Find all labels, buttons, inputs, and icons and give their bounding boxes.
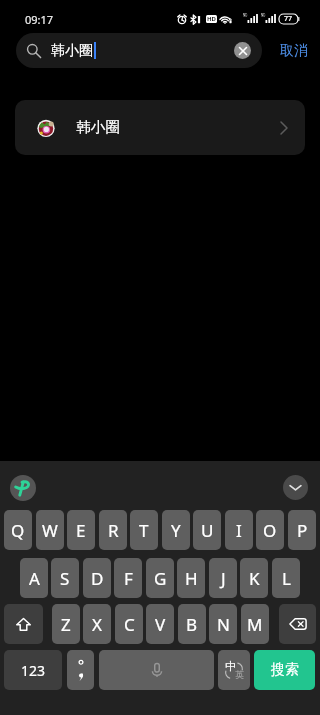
button[interactable]: Switch Chinese English	[218, 650, 250, 690]
button[interactable]: C	[115, 604, 143, 644]
button[interactable]: Y	[162, 510, 190, 550]
button[interactable]: S	[51, 558, 79, 598]
button[interactable]: 韩小圈	[15, 100, 305, 155]
staticText: G	[154, 567, 167, 590]
staticText: B	[186, 613, 198, 636]
button[interactable]: Input method settings	[10, 475, 36, 501]
button[interactable]: Backspace	[279, 604, 316, 644]
staticText: 09:17	[25, 12, 54, 27]
button[interactable]: D	[83, 558, 111, 598]
button[interactable]: F	[114, 558, 142, 598]
staticText: X	[92, 613, 102, 636]
staticText: 韩小圈	[76, 118, 121, 137]
button[interactable]: Q	[4, 510, 32, 550]
button[interactable]: Z	[52, 604, 80, 644]
staticText: W	[42, 519, 58, 542]
button[interactable]: R	[99, 510, 127, 550]
button[interactable]: M	[241, 604, 269, 644]
staticText: P	[297, 519, 308, 542]
staticText: A	[29, 567, 40, 590]
button[interactable]: K	[240, 558, 268, 598]
button[interactable]: Hide keyboard	[283, 475, 308, 500]
staticText: T	[139, 519, 149, 542]
staticText: 韩小圈	[51, 42, 93, 60]
button[interactable]: L	[272, 558, 300, 598]
staticText: J	[221, 567, 226, 590]
staticText: HD	[207, 15, 216, 23]
button[interactable]: H	[177, 558, 205, 598]
staticText: 取消	[280, 42, 308, 60]
staticText: 77	[284, 14, 293, 24]
staticText: K	[249, 567, 260, 590]
button[interactable]: G	[146, 558, 174, 598]
staticText: O	[263, 519, 277, 542]
staticText: V	[155, 613, 166, 636]
button[interactable]: 取消	[262, 33, 320, 68]
button[interactable]: O	[256, 510, 284, 550]
staticText: M	[247, 613, 263, 636]
button[interactable]: E	[67, 510, 95, 550]
staticText: H	[185, 567, 198, 590]
button[interactable]: I	[225, 510, 253, 550]
staticText: I	[236, 519, 242, 542]
staticText: F	[124, 567, 133, 590]
staticText: N	[217, 613, 230, 636]
staticText: E	[76, 519, 86, 542]
button[interactable]: A	[20, 558, 48, 598]
button[interactable]: Space	[99, 650, 214, 690]
button[interactable]: Shift	[4, 604, 43, 644]
button[interactable]: P	[288, 510, 316, 550]
button[interactable]: 搜索	[254, 650, 315, 690]
button[interactable]: 韩小圈	[16, 33, 262, 68]
button[interactable]: X	[83, 604, 111, 644]
staticText: L	[282, 567, 291, 590]
staticText: C	[124, 613, 135, 636]
staticText: 123	[21, 661, 46, 680]
button[interactable]: W	[36, 510, 64, 550]
button[interactable]: U	[193, 510, 221, 550]
staticText: 英	[235, 669, 244, 680]
staticText: Y	[171, 519, 181, 542]
staticText: 中	[225, 659, 236, 673]
button[interactable]: Clear search	[234, 42, 251, 59]
button[interactable]: N	[209, 604, 237, 644]
button[interactable]: J	[209, 558, 237, 598]
staticText: U	[201, 519, 214, 542]
staticText: Q	[11, 519, 25, 542]
staticText: Z	[61, 613, 71, 636]
button[interactable]: Semicolon	[67, 650, 94, 690]
button[interactable]: V	[146, 604, 174, 644]
button[interactable]: T	[130, 510, 158, 550]
staticText: 搜索	[271, 661, 299, 679]
staticText: R	[108, 519, 119, 542]
staticText: S	[60, 567, 70, 590]
button[interactable]: 123	[4, 650, 62, 690]
button[interactable]: B	[178, 604, 206, 644]
staticText: D	[91, 567, 104, 590]
